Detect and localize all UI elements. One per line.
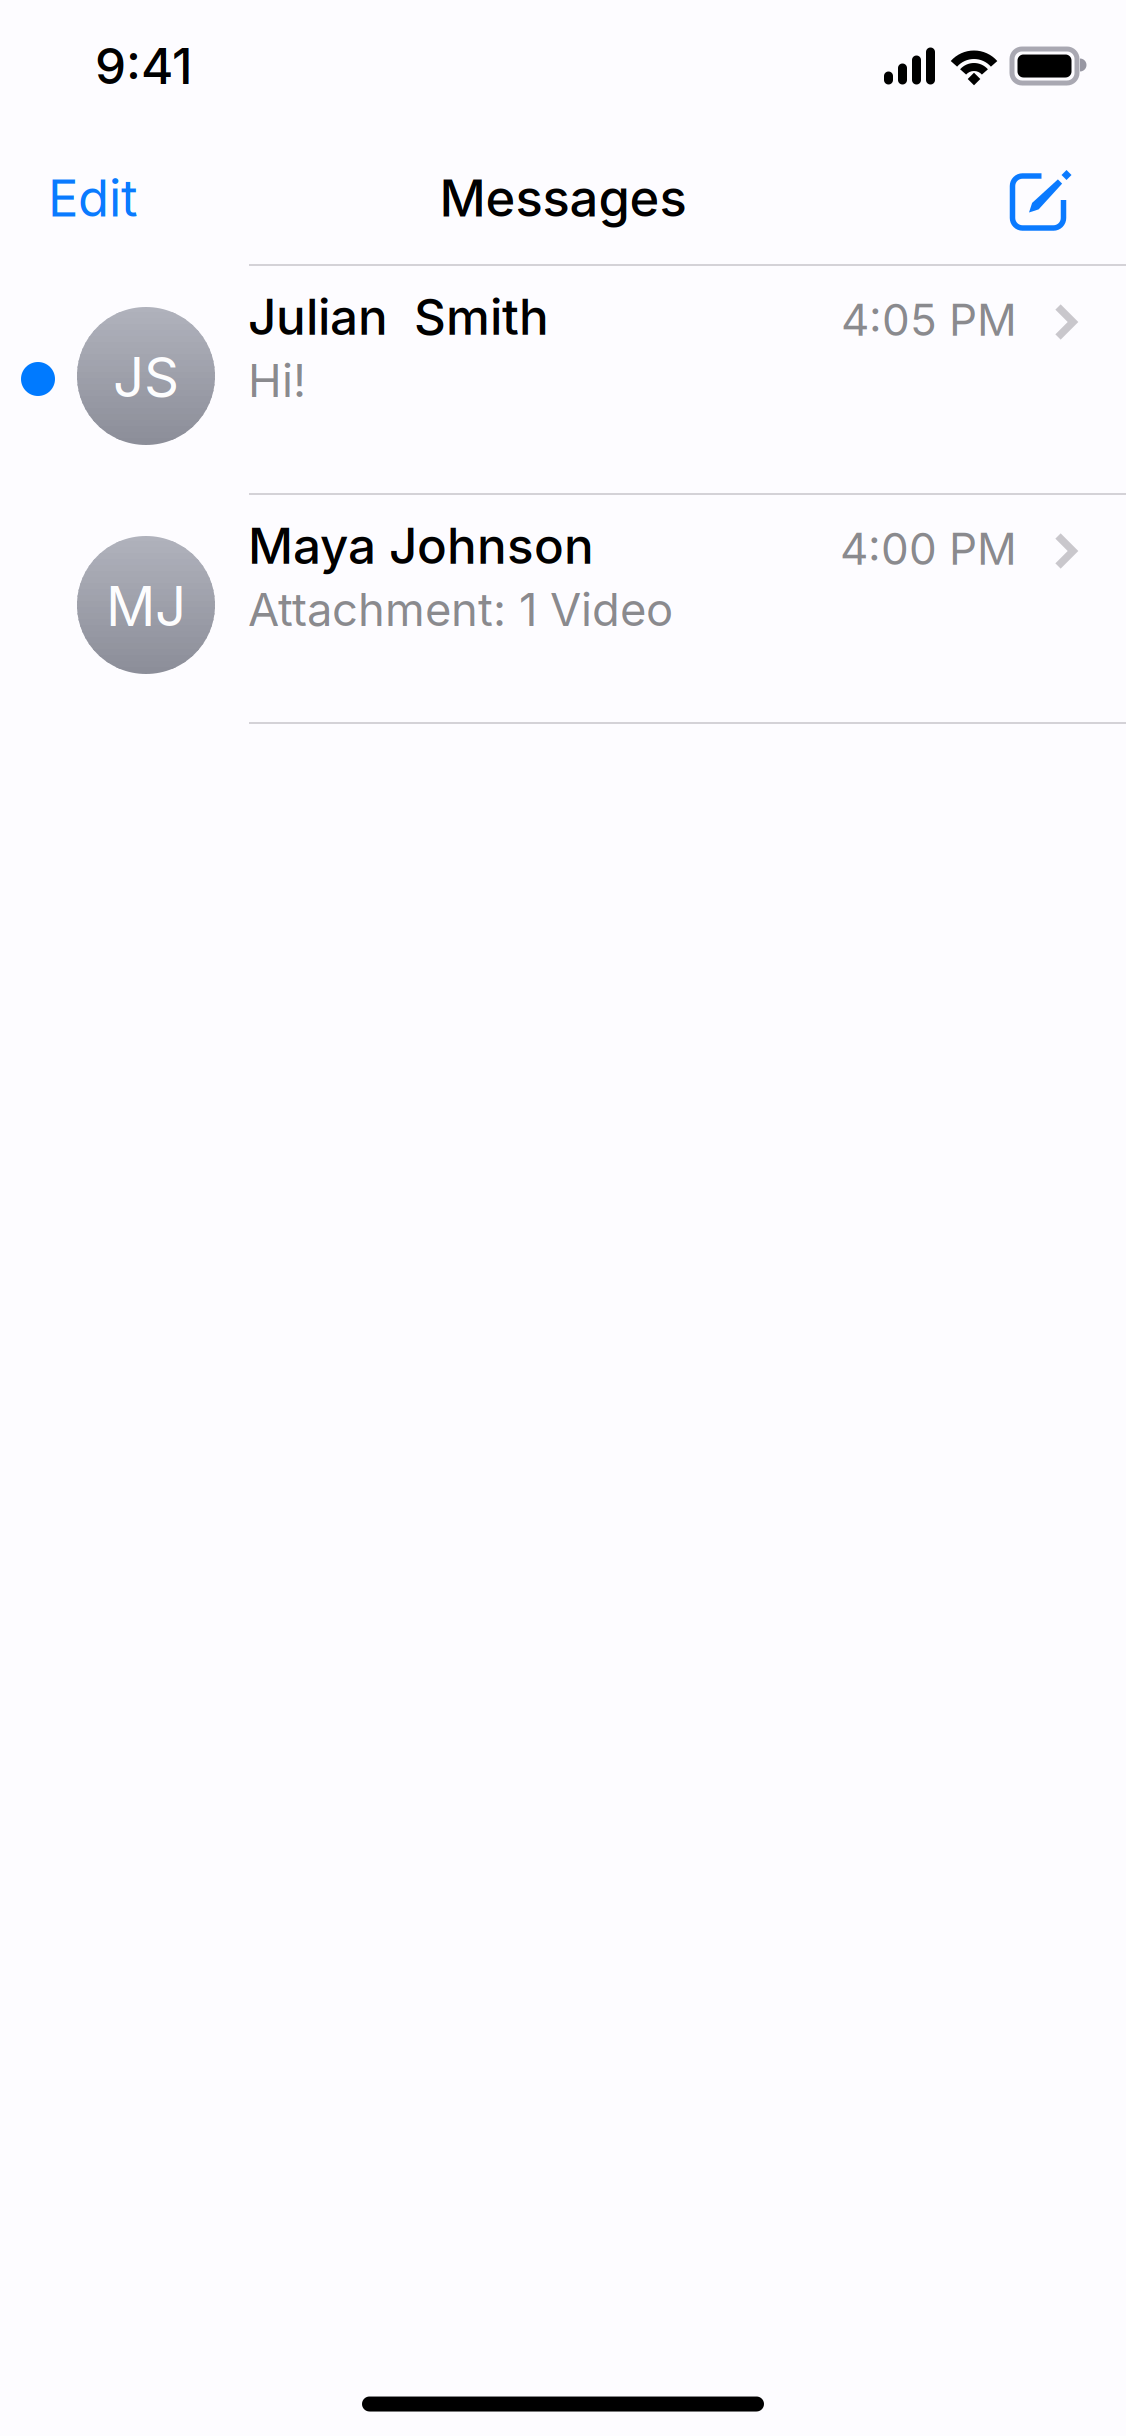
staticText: MJ [106,573,186,639]
staticText: JS [113,344,179,410]
staticText: Messages [439,167,686,229]
staticText: 4:05 PM [841,293,1017,346]
button[interactable]: Compose [1004,154,1126,242]
button[interactable]: MJ [0,495,1126,722]
staticText: Maya Johnson [248,516,594,576]
staticText: Julian Smith [248,287,549,347]
staticText: 4:00 PM [840,522,1017,575]
staticText: Attachment: 1 Video [248,582,673,637]
staticText: 9:41 [95,36,192,96]
button[interactable]: JS [0,266,1126,493]
staticText: Edit [48,167,138,229]
button[interactable]: Edit [0,143,174,253]
staticText: Hi! [248,353,306,408]
